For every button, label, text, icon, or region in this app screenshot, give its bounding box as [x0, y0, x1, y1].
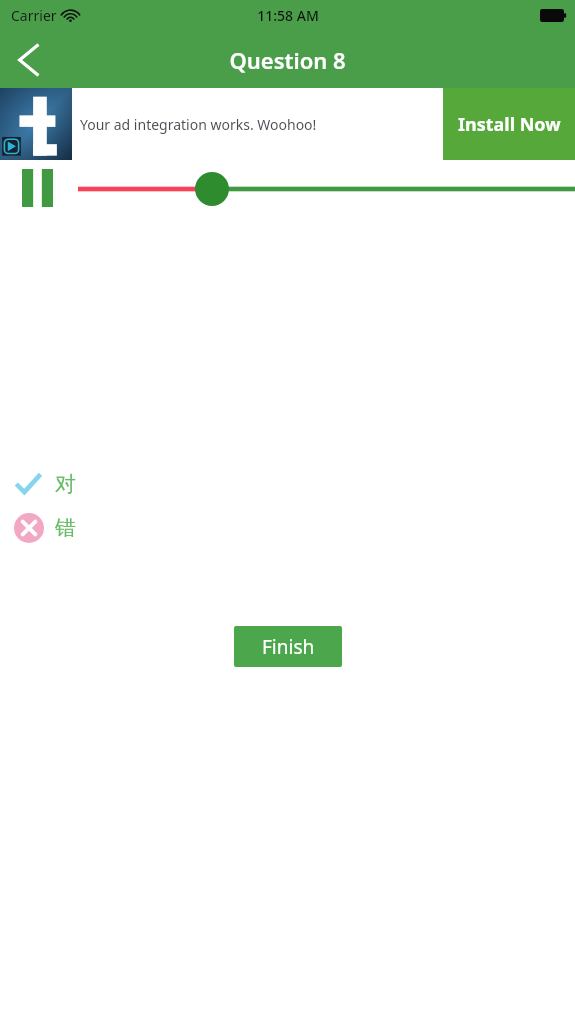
button[interactable]: Back [0, 31, 56, 88]
staticText: 对 [55, 471, 76, 497]
staticText: Carrier [11, 6, 57, 25]
button[interactable]: 对 [0, 462, 575, 506]
button[interactable]: 错 [0, 506, 575, 550]
button[interactable]: Your ad integration works. Woohoo! [0, 88, 575, 160]
staticText: 错 [55, 515, 76, 541]
button[interactable]: Finish [234, 626, 342, 667]
staticText: Your ad integration works. Woohoo! [80, 115, 317, 134]
staticText: Install Now [458, 112, 561, 137]
button[interactable]: Install Now [443, 88, 575, 160]
button[interactable]: Pause [18, 168, 56, 208]
button[interactable]: Playback position [78, 168, 575, 208]
staticText: 11:58 AM [257, 6, 319, 25]
staticText: Question 8 [229, 45, 346, 75]
staticText: Finish [262, 634, 315, 660]
